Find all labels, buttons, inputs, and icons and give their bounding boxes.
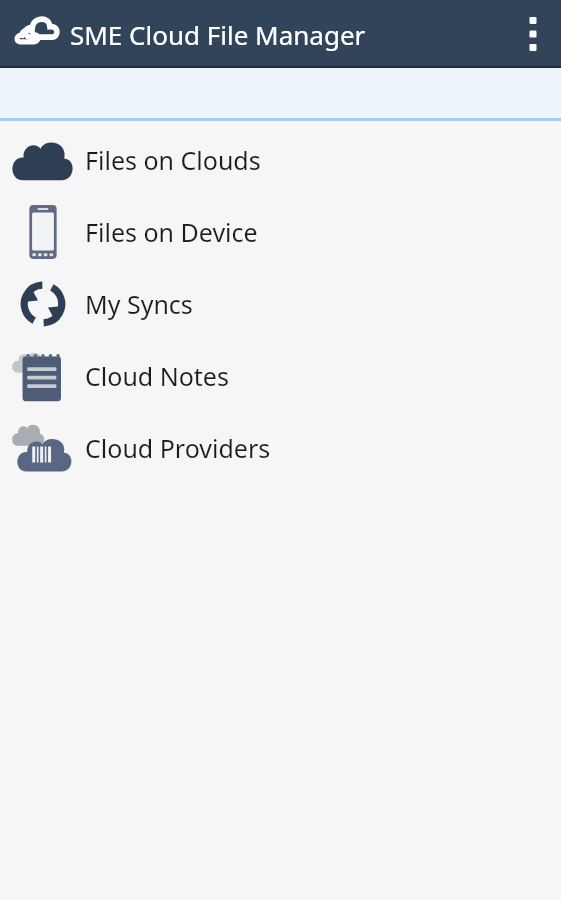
- staticText: My Syncs: [85, 287, 193, 321]
- staticText: Files on Device: [85, 215, 258, 249]
- button[interactable]: Cloud Notes: [0, 340, 561, 412]
- button[interactable]: Files on Device: [0, 196, 561, 268]
- button[interactable]: Files on Clouds: [0, 124, 561, 196]
- staticText: Cloud Providers: [85, 431, 271, 465]
- staticText: Cloud Notes: [85, 359, 229, 393]
- button[interactable]: Cloud Providers: [0, 412, 561, 484]
- button[interactable]: My Syncs: [0, 268, 561, 340]
- staticText: SME Cloud File Manager: [70, 17, 366, 52]
- button[interactable]: More options: [505, 0, 561, 68]
- staticText: Files on Clouds: [85, 143, 261, 177]
